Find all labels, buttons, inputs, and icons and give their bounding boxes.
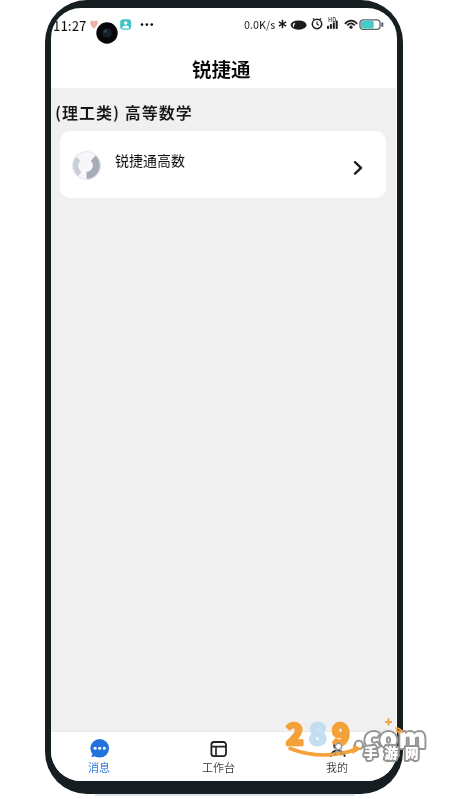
staticText: 工作台	[202, 759, 235, 775]
staticText: (理工类) 高等数学	[55, 100, 193, 123]
button[interactable]: 消息	[51, 731, 149, 781]
staticText: 锐捷通高数	[115, 150, 185, 170]
staticText: 9	[332, 711, 350, 753]
staticText: 我的	[326, 759, 348, 775]
button[interactable]: 我的	[287, 731, 387, 781]
staticText: 0.0K/s	[244, 17, 276, 32]
staticText: HD	[328, 16, 337, 24]
staticText: 锐捷通	[192, 54, 251, 82]
staticText: 2	[286, 711, 304, 753]
staticText: 手游网	[364, 742, 426, 762]
staticText: 2	[286, 711, 304, 753]
staticText: .com	[354, 716, 428, 757]
staticText: 65	[365, 18, 373, 27]
staticText: 11:27	[53, 16, 87, 35]
staticText: 8	[309, 711, 327, 753]
staticText: .com	[354, 716, 428, 757]
staticText: 8	[309, 711, 327, 753]
staticText: 9	[332, 711, 350, 753]
button[interactable]: 工作台	[168, 731, 268, 781]
staticText: 消息	[88, 759, 110, 775]
staticText: 手游网	[364, 742, 426, 762]
button[interactable]: 锐捷通高数	[60, 131, 386, 198]
